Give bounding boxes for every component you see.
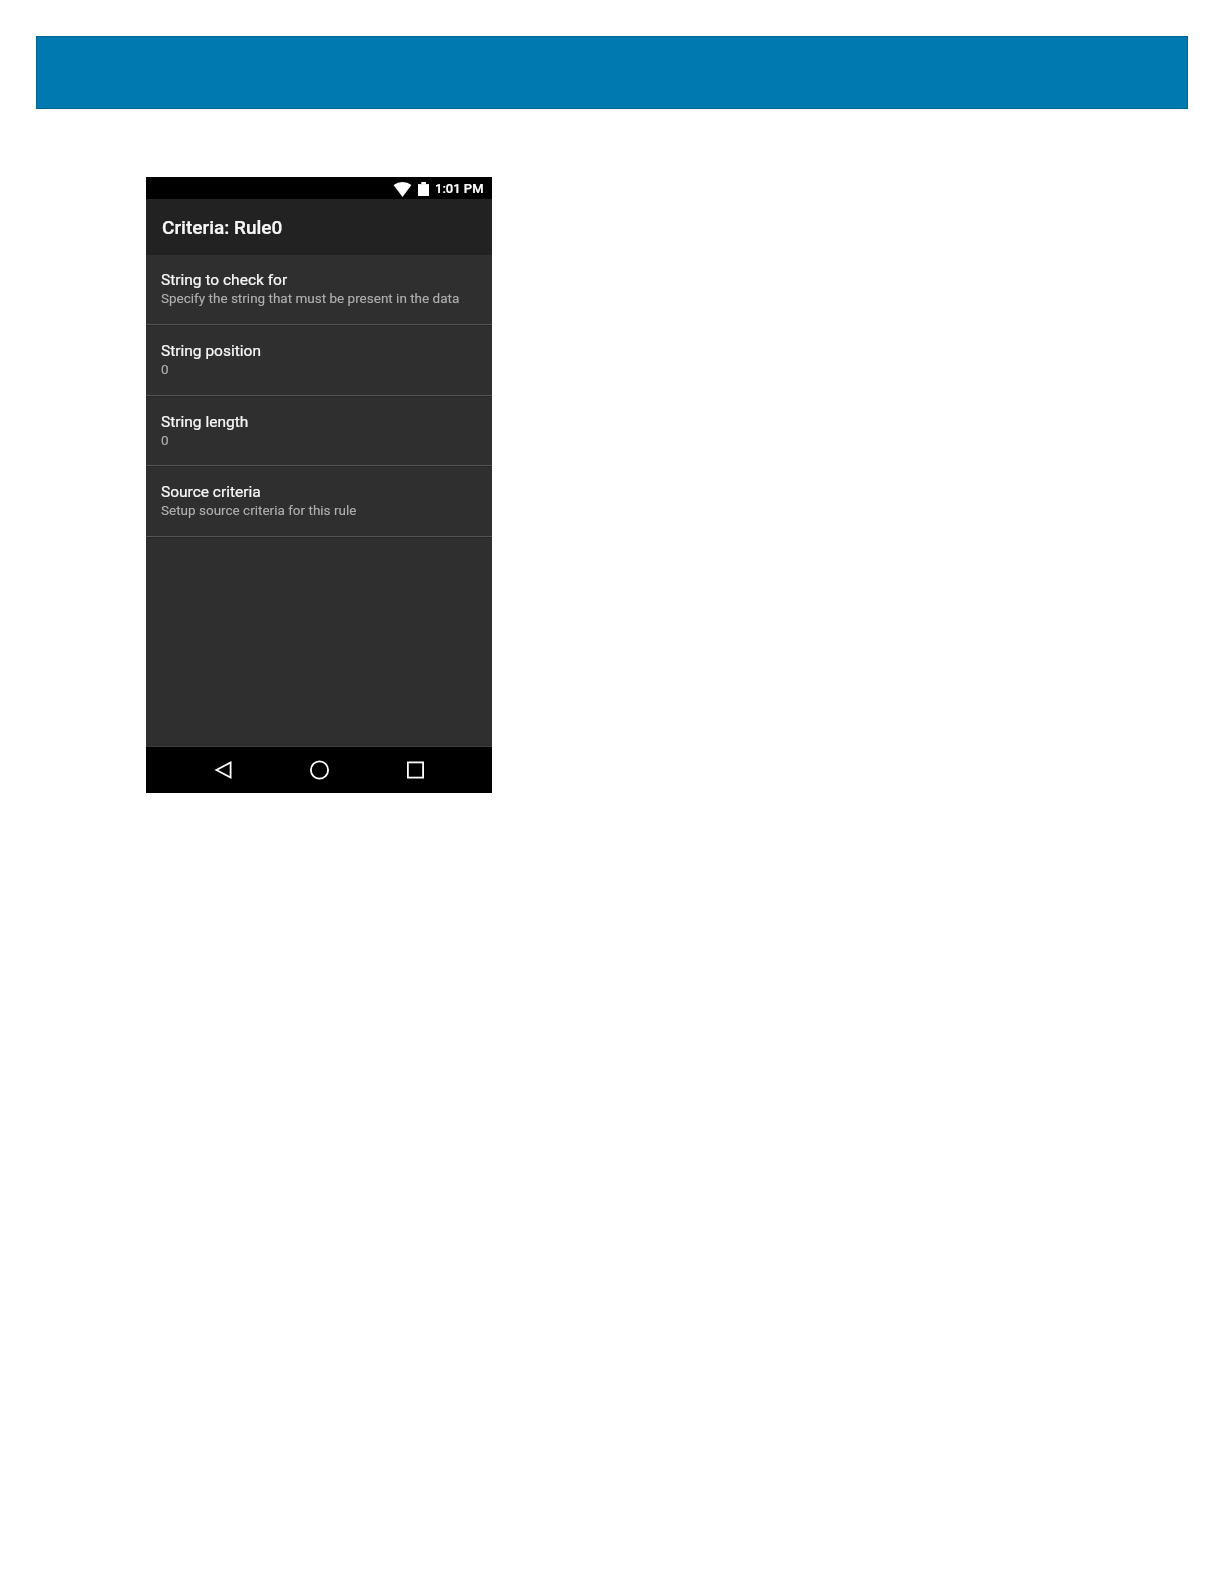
staticText: Criteria: Rule0: [162, 216, 283, 238]
staticText: Specify the string that must be present …: [161, 290, 460, 306]
button[interactable]: Home: [296, 747, 342, 793]
staticText: 1:01 PM: [435, 181, 484, 196]
staticText: String length: [161, 413, 249, 431]
staticText: Setup source criteria for this rule: [161, 502, 357, 518]
button[interactable]: Source criteria: [146, 467, 492, 536]
staticText: String to check for: [161, 271, 288, 289]
button[interactable]: Recent apps: [392, 747, 438, 793]
staticText: Source criteria: [161, 483, 261, 501]
button[interactable]: Back: [200, 747, 246, 793]
button[interactable]: String length: [146, 397, 492, 465]
button[interactable]: String position: [146, 326, 492, 395]
staticText: 0: [161, 361, 169, 377]
staticText: String position: [161, 342, 261, 360]
staticText: 0: [161, 432, 169, 448]
button[interactable]: String to check for: [146, 255, 492, 324]
